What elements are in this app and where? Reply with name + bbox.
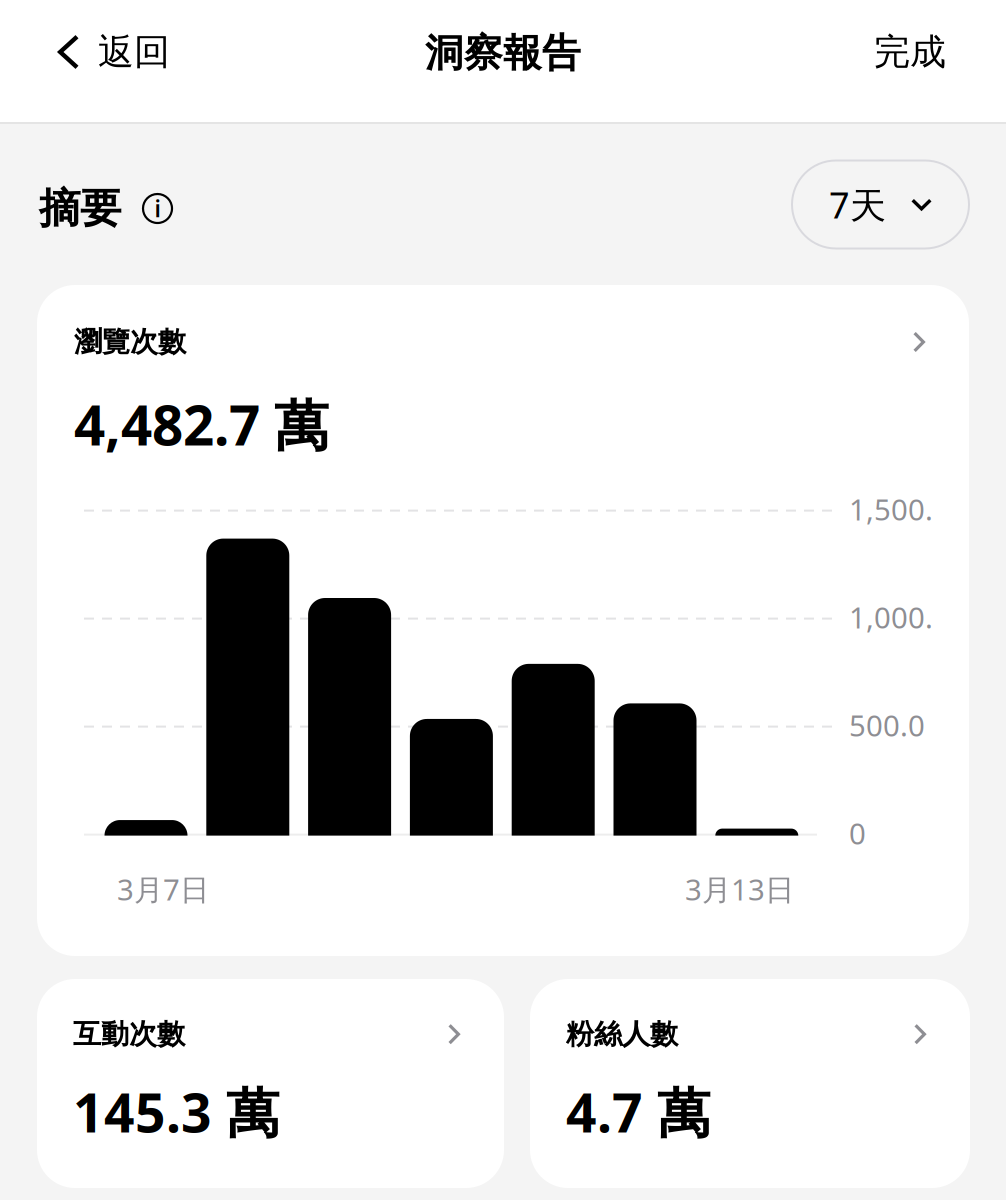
button[interactable]: 返回 — [0, 0, 190, 122]
staticText: 0 — [849, 814, 866, 853]
button[interactable]: 瀏覽次數 — [37, 285, 969, 956]
staticText: 500.0 — [849, 706, 925, 745]
staticText: 7天 — [829, 181, 886, 228]
staticText: 粉絲人數 — [566, 1017, 678, 1051]
staticText: 4.7 萬 — [566, 1076, 710, 1147]
button[interactable]: 粉絲人數 — [530, 979, 970, 1188]
button[interactable]: 7天 — [792, 164, 969, 252]
staticText: 3月13日 — [685, 870, 794, 909]
staticText: 1,000. — [849, 598, 933, 637]
staticText: 完成 — [874, 30, 946, 74]
button[interactable]: 互動次數 — [37, 979, 504, 1188]
staticText: 洞察報告 — [425, 29, 581, 77]
button[interactable]: 完成 — [854, 0, 1006, 122]
staticText: 返回 — [98, 30, 170, 74]
staticText: 1,500. — [849, 490, 933, 529]
staticText: 3月7日 — [117, 870, 209, 909]
staticText: 145.3 萬 — [73, 1076, 279, 1147]
staticText: 4,482.7 萬 — [74, 388, 329, 461]
staticText: 摘要 — [39, 183, 121, 234]
staticText: i — [154, 193, 160, 223]
staticText: 瀏覽次數 — [74, 325, 186, 359]
staticText: 互動次數 — [73, 1017, 185, 1051]
